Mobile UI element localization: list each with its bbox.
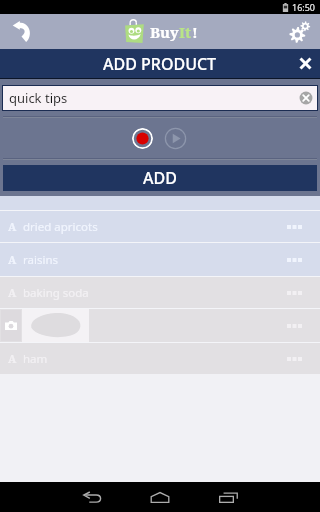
staticText: raisins	[23, 252, 59, 268]
button[interactable]: quick tips	[3, 86, 317, 110]
button[interactable]: A	[0, 243, 320, 276]
staticText: !	[192, 22, 198, 42]
button[interactable]: Play	[164, 127, 187, 150]
staticText: A	[8, 285, 17, 300]
staticText: A	[8, 219, 17, 234]
staticText: baking soda	[23, 285, 89, 301]
staticText: quick tips	[9, 89, 68, 107]
staticText: It	[179, 22, 192, 42]
staticText: ADD	[143, 167, 177, 189]
button[interactable]: Settings	[282, 14, 320, 49]
staticText: Buy	[150, 22, 179, 42]
button[interactable]: More options	[281, 277, 307, 308]
staticText: A	[8, 252, 17, 267]
button[interactable]: A	[0, 211, 320, 242]
staticText: ham	[23, 351, 48, 367]
button[interactable]: Back	[0, 14, 42, 49]
button[interactable]: ADD	[3, 165, 317, 191]
staticText: ADD PRODUCT	[103, 53, 217, 75]
staticText: 16:50	[292, 1, 316, 13]
button[interactable]: Back	[56, 482, 128, 512]
button[interactable]: Close	[290, 49, 320, 78]
button[interactable]: More options	[281, 211, 307, 242]
button[interactable]: Recents	[192, 482, 264, 512]
button[interactable]: Clear text	[299, 91, 313, 105]
button[interactable]: Record	[132, 128, 153, 149]
button[interactable]: More options	[281, 343, 307, 374]
button[interactable]: More options	[0, 309, 320, 342]
button[interactable]: Home	[124, 482, 196, 512]
button[interactable]: More options	[281, 243, 307, 276]
staticText: A	[8, 351, 17, 366]
staticText: dried apricots	[23, 219, 98, 235]
button[interactable]: More options	[281, 309, 307, 342]
